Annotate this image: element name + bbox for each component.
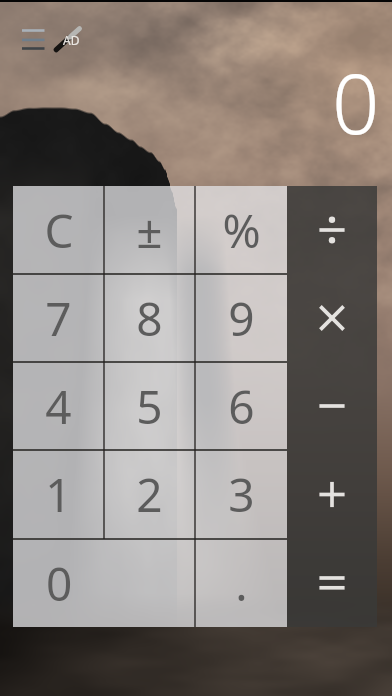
staticText: 0 [332,45,380,158]
staticText: % [222,199,261,262]
button[interactable]: 0 [13,539,195,627]
button[interactable]: Menu [22,26,45,52]
staticText: . [235,552,248,615]
staticText: ± [136,199,163,262]
staticText: 2 [136,463,163,526]
staticText: 8 [136,287,163,350]
staticText: 7 [45,287,72,350]
staticText: 9 [228,287,255,350]
staticText: 4 [45,375,72,438]
button[interactable]: 1 [13,450,104,539]
button[interactable]: C [13,186,104,274]
button[interactable]: Divide [287,186,377,274]
button[interactable]: 4 [13,362,104,450]
button[interactable]: Equals [287,539,377,627]
button[interactable]: 9 [195,274,287,362]
staticText: 1 [45,463,72,526]
button[interactable]: 2 [104,450,195,539]
button[interactable]: 6 [195,362,287,450]
button[interactable]: ± [104,186,195,274]
staticText: AD [63,32,80,48]
button[interactable]: % [195,186,287,274]
button[interactable]: 8 [104,274,195,362]
button[interactable]: Ad [54,26,82,52]
button[interactable]: 5 [104,362,195,450]
staticText: 5 [136,375,163,438]
button[interactable]: Multiply [287,274,377,362]
button[interactable]: 3 [195,450,287,539]
staticText: 3 [228,463,255,526]
button[interactable]: 7 [13,274,104,362]
button[interactable]: . [195,539,287,627]
button[interactable]: Add [287,450,377,539]
button[interactable]: Subtract [287,362,377,450]
staticText: 0 [46,552,73,615]
staticText: 6 [228,375,255,438]
staticText: C [44,199,74,262]
